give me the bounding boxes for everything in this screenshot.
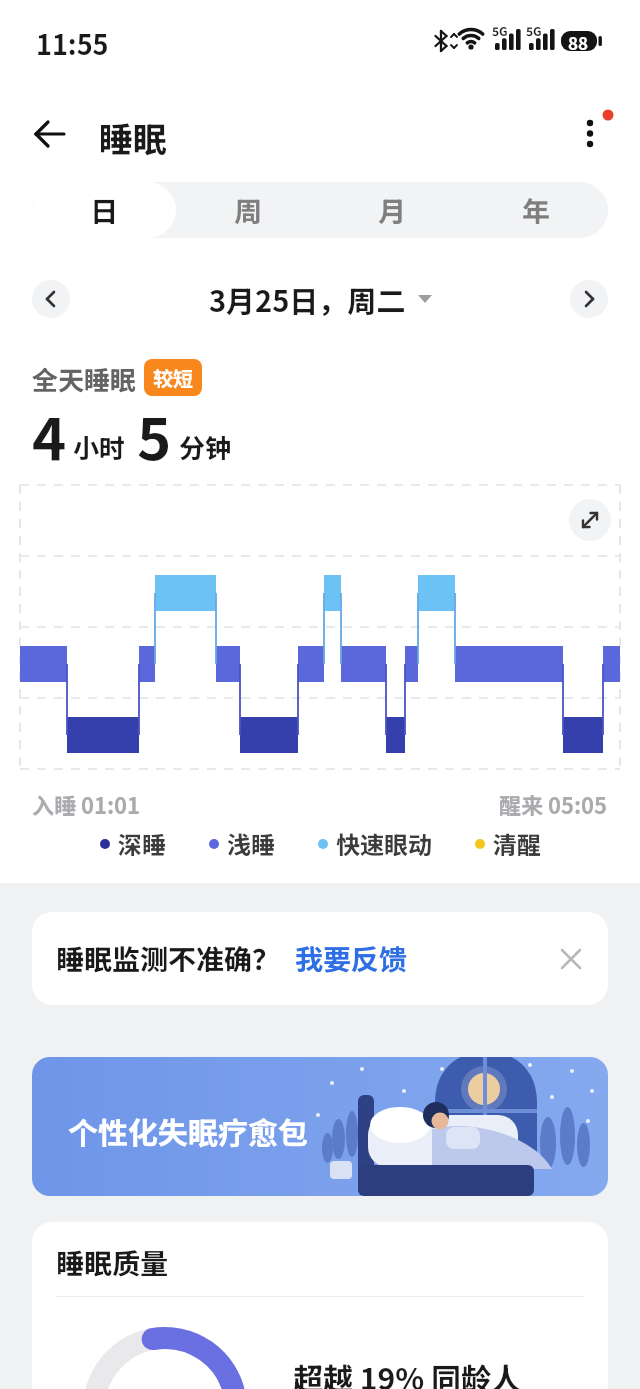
staticText: 周 [234,190,263,231]
staticText: 较短 [153,363,193,392]
staticText: 5G [492,22,508,39]
button[interactable] [572,106,620,160]
button[interactable] [28,114,72,154]
button[interactable]: 月 [320,182,464,238]
button[interactable]: 3月25日，周二 [0,278,640,320]
staticText: 小时 [73,428,126,466]
staticText: 全天睡眠 [32,360,137,398]
staticText: 日 [90,190,119,231]
button[interactable]: 年 [464,182,608,238]
staticText: 分钟 [179,428,232,466]
button[interactable]: 睡眠质量 [32,1222,608,1389]
staticText: 醒来 05:05 [499,788,608,820]
button[interactable] [570,280,608,318]
staticText: 睡眠质量 [56,1242,169,1283]
staticText: 个性化失眠疗愈包 [68,1109,308,1152]
button[interactable]: 我要反馈 [295,938,408,979]
staticText: 深睡 [118,826,166,861]
staticText: 11:55 [36,24,109,63]
button[interactable] [569,499,611,541]
staticText: 浅睡 [227,826,275,861]
staticText: 入睡 01:01 [32,788,141,820]
staticText: 88 [568,30,589,55]
button[interactable]: 日 [32,182,176,238]
staticText: 4 [32,394,67,478]
staticText: 睡眠监测不准确？ [56,938,281,979]
staticText: 月 [378,190,407,231]
staticText: 5 [137,394,172,478]
button[interactable]: 睡眠监测不准确？ [32,912,608,1005]
button[interactable]: 周 [176,182,320,238]
button[interactable] [32,280,70,318]
staticText: 睡眠 [99,113,167,162]
staticText: 3月25日，周二 [209,278,406,320]
staticText: 超越 19% 同龄人 [293,1355,521,1389]
staticText: 清醒 [493,826,541,861]
staticText: 5G [526,22,542,39]
button[interactable] [558,946,584,972]
button[interactable]: 个性化失眠疗愈包 [32,1057,608,1196]
staticText: 年 [522,190,551,231]
staticText: 快速眼动 [336,826,432,861]
